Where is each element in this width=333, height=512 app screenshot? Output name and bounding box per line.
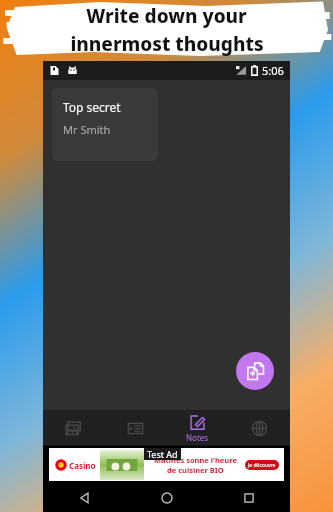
button[interactable]: Notes xyxy=(166,410,228,446)
staticText: 5:06 xyxy=(262,63,284,78)
button[interactable]: New note xyxy=(236,352,274,390)
button[interactable]: Casino xyxy=(49,448,284,481)
button[interactable]: Top secret xyxy=(52,88,158,161)
staticText: Top secret xyxy=(63,99,121,115)
staticText: Casino xyxy=(69,460,96,471)
button[interactable]: Home xyxy=(126,483,208,512)
staticText: Je découvre xyxy=(248,462,276,469)
staticText: Mr Smith xyxy=(63,122,111,137)
staticText: Matines sonne l'heure xyxy=(154,455,237,465)
button[interactable]: Recents xyxy=(208,483,290,512)
button[interactable]: Gallery xyxy=(43,410,104,446)
button[interactable]: Lists xyxy=(104,410,166,446)
staticText: innermost thoughts xyxy=(70,31,264,57)
button[interactable]: Back xyxy=(43,483,126,512)
button[interactable]: Je découvre xyxy=(245,460,279,470)
staticText: Write down your xyxy=(86,3,247,29)
staticText: de cuisiner BIO xyxy=(167,465,224,475)
button[interactable]: Web xyxy=(228,410,290,446)
staticText: Test Ad xyxy=(147,448,178,460)
staticText: Notes xyxy=(186,432,209,443)
